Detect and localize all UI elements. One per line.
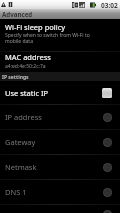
button[interactable]: Use static IP: [0, 81, 120, 104]
button[interactable]: DNS 1: [0, 180, 120, 204]
button[interactable]: DNS 2: [0, 205, 120, 213]
staticText: Advanced: [2, 10, 33, 18]
staticText: IP address: [5, 112, 42, 122]
staticText: Specify when to switch from Wi-Fi to mob…: [5, 32, 90, 45]
button[interactable]: Gateway: [0, 130, 120, 154]
staticText: Wi-Fi sleep policy: [5, 22, 66, 32]
button[interactable]: Netmask: [0, 155, 120, 179]
staticText: MAC address: [5, 52, 51, 62]
staticText: IP settings: [2, 74, 29, 81]
staticText: Gateway: [5, 137, 36, 147]
other: Mobile data: [72, 2, 78, 8]
other: Signal strength: [79, 2, 85, 8]
staticText: Use static IP: [5, 88, 49, 98]
staticText: a4:ed:4e:50:2c:7a: [5, 63, 46, 70]
other: Battery: [90, 2, 96, 8]
button[interactable]: IP address: [0, 105, 120, 129]
button[interactable]: MAC address: [0, 52, 120, 72]
staticText: Netmask: [5, 162, 37, 172]
staticText: DNS 1: [5, 187, 27, 197]
staticText: 03:02: [101, 1, 118, 10]
button[interactable]: Wi-Fi sleep policy: [0, 19, 120, 51]
